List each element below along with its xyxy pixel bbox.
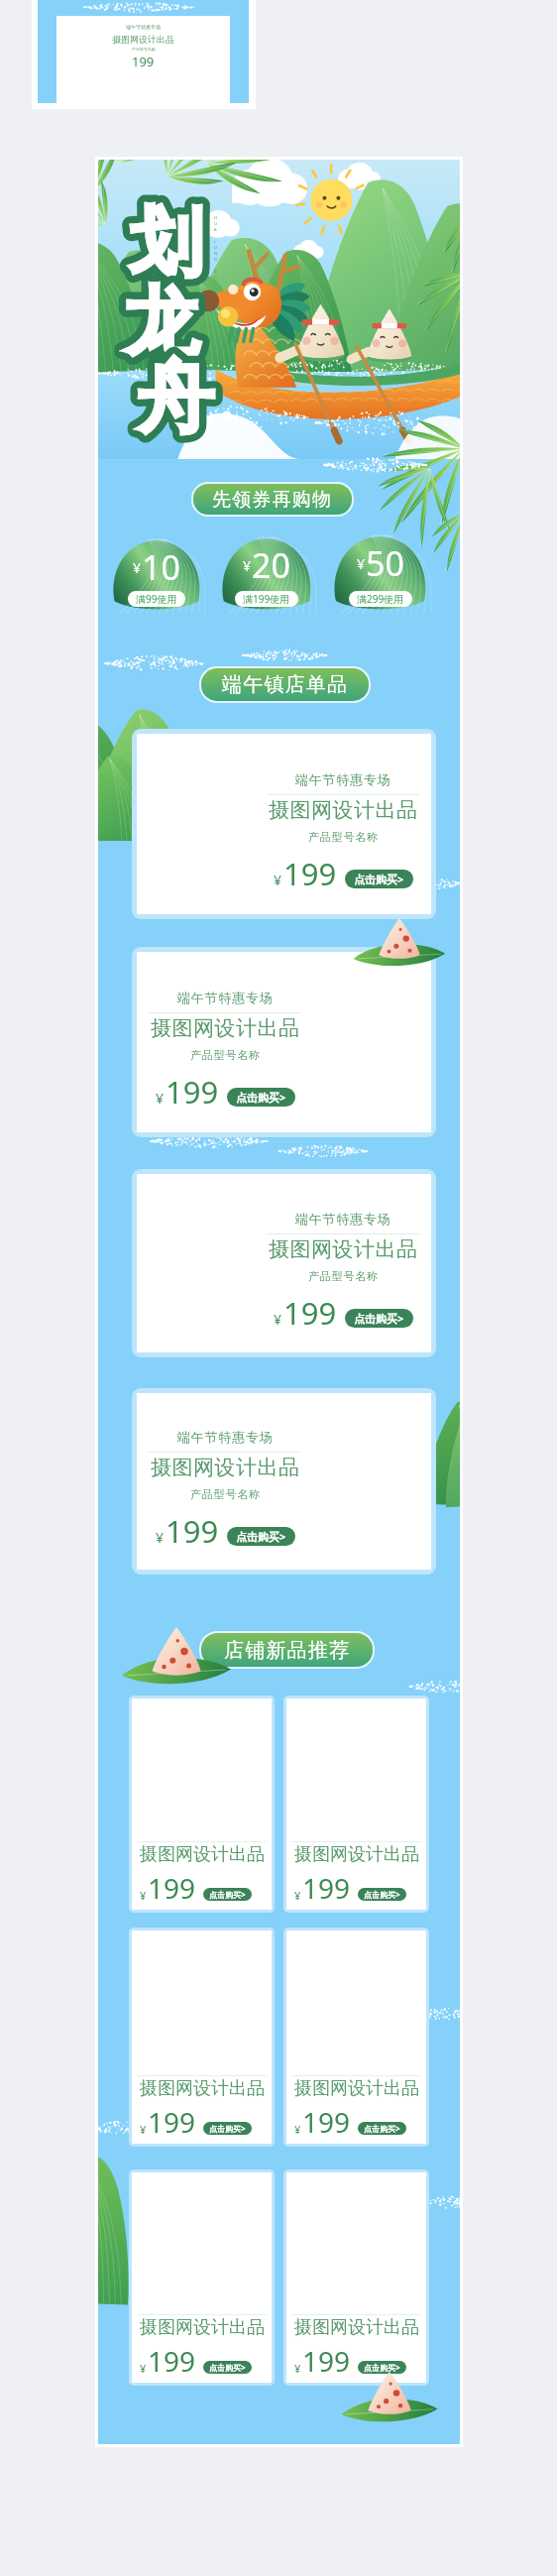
staticText: ¥: [156, 1089, 165, 1108]
staticText: 20: [252, 542, 290, 588]
staticText: 10: [142, 544, 180, 590]
staticText: ¥: [140, 1888, 147, 1903]
staticText: 摄图网设计出品: [294, 2316, 419, 2339]
button[interactable]: 先领券再购物: [193, 484, 352, 515]
staticText: 199: [148, 2342, 196, 2380]
staticText: 产品型号名称: [308, 830, 379, 844]
staticText: 199: [166, 1071, 219, 1112]
button[interactable]: 摄图网设计出品: [286, 1698, 426, 1910]
staticText: 199: [148, 1869, 196, 1907]
staticText: 摄图网设计出品: [269, 1236, 418, 1262]
staticText: ¥: [274, 1310, 282, 1329]
button[interactable]: 端午镇店单品: [201, 668, 369, 701]
staticText: 满199使用: [243, 592, 290, 606]
button[interactable]: 店铺新品推荐: [201, 1633, 373, 1667]
staticText: 199: [283, 853, 337, 894]
staticText: ¥: [294, 2361, 301, 2376]
button[interactable]: 点击购买>: [358, 1888, 406, 1901]
staticText: 产品型号名称: [190, 1048, 261, 1062]
staticText: 摄图网设计出品: [140, 1843, 265, 1866]
button[interactable]: 点击购买>: [203, 1888, 252, 1901]
staticText: 199: [148, 2103, 196, 2141]
staticText: ¥: [140, 2361, 147, 2376]
staticText: 点击购买>: [236, 1529, 286, 1544]
button[interactable]: 摄图网设计出品: [132, 1931, 272, 2144]
button[interactable]: 点击购买>: [345, 870, 413, 888]
staticText: 摄图网设计出品: [151, 1015, 300, 1041]
staticText: 满299使用: [357, 592, 404, 606]
button[interactable]: ¥: [332, 536, 428, 610]
staticText: 50: [366, 540, 404, 586]
button[interactable]: 摄图网设计出品: [132, 2172, 272, 2383]
button[interactable]: 摄图网设计出品: [286, 1931, 426, 2144]
staticText: 端午节特惠专场: [177, 990, 274, 1005]
staticText: 摄图网设计出品: [294, 1843, 419, 1866]
button[interactable]: 端午节特惠专场: [137, 1393, 431, 1570]
staticText: ¥: [357, 554, 366, 573]
staticText: 199: [132, 53, 155, 70]
staticText: ¥: [156, 1528, 165, 1547]
staticText: 先领券再购物: [212, 488, 333, 512]
staticText: 端午节特惠专场: [295, 1211, 391, 1227]
staticText: 199: [166, 1510, 219, 1552]
button[interactable]: 点击购买>: [203, 2122, 252, 2135]
button[interactable]: 摄图网设计出品: [286, 2172, 426, 2383]
staticText: 点击购买>: [236, 1090, 286, 1105]
staticText: 龙: [124, 276, 199, 371]
staticText: 点击购买>: [354, 1311, 404, 1326]
staticText: 舟: [137, 350, 214, 447]
staticText: 点击购买>: [364, 2362, 400, 2373]
staticText: 满99使用: [136, 592, 177, 606]
button[interactable]: 点击购买>: [227, 1088, 295, 1107]
button[interactable]: 点击购买>: [358, 2361, 406, 2374]
staticText: 摄图网设计出品: [151, 1455, 300, 1480]
staticText: 舟: [137, 350, 214, 447]
staticText: 摄图网设计出品: [294, 2077, 419, 2100]
staticText: 点击购买>: [209, 2362, 246, 2373]
button[interactable]: 点击购买>: [227, 1527, 295, 1546]
staticText: 摄图网设计出品: [140, 2077, 265, 2100]
staticText: 点击购买>: [209, 2123, 246, 2134]
staticText: 店铺新品推荐: [224, 1638, 351, 1663]
staticText: 龙: [124, 276, 199, 371]
button[interactable]: 点击购买>: [203, 2361, 252, 2374]
staticText: 点击购买>: [209, 1889, 246, 1900]
staticText: 产品型号名称: [132, 47, 156, 52]
staticText: 产品型号名称: [308, 1269, 379, 1283]
staticText: 摄图网设计出品: [269, 797, 418, 823]
button[interactable]: 端午节特惠专场: [137, 952, 431, 1132]
staticText: 端午节特惠专场: [177, 1429, 274, 1445]
staticText: 点击购买>: [364, 2123, 400, 2134]
staticText: 产品型号名称: [190, 1487, 261, 1501]
staticText: 端午节特惠专场: [295, 771, 391, 787]
staticText: 点击购买>: [364, 1889, 400, 1900]
staticText: ¥: [274, 871, 282, 889]
button[interactable]: 点击购买>: [358, 2122, 406, 2135]
staticText: ¥: [294, 2122, 301, 2137]
staticText: ¥: [133, 558, 142, 577]
staticText: 端午节特惠专场: [126, 24, 161, 30]
staticText: ¥: [243, 556, 252, 575]
staticText: ¥: [294, 1888, 301, 1903]
staticText: 点击购买>: [354, 872, 404, 886]
staticText: 199: [302, 2103, 351, 2141]
staticText: 199: [302, 2342, 351, 2380]
button[interactable]: 端午节特惠专场: [137, 1174, 431, 1352]
staticText: 划: [129, 196, 203, 290]
button[interactable]: 端午节特惠专场: [137, 734, 431, 914]
button[interactable]: 点击购买>: [345, 1309, 413, 1328]
staticText: ¥: [140, 2122, 147, 2137]
staticText: 划: [129, 196, 203, 290]
staticText: 端午镇店单品: [222, 672, 349, 697]
staticText: 199: [283, 1292, 337, 1334]
button[interactable]: ¥: [220, 538, 313, 610]
button[interactable]: ¥: [111, 540, 202, 610]
staticText: 199: [302, 1869, 351, 1907]
staticText: 摄图网设计出品: [140, 2316, 265, 2339]
staticText: H U A L O N G Z H O U: [214, 215, 218, 293]
button[interactable]: 摄图网设计出品: [132, 1698, 272, 1910]
staticText: 摄图网设计出品: [112, 34, 174, 45]
